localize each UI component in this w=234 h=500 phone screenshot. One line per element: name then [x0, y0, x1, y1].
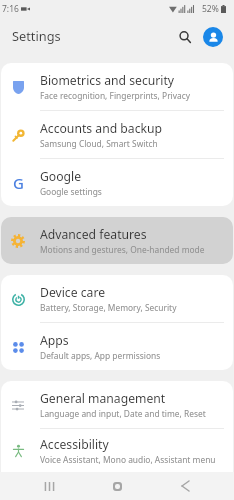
button[interactable]: General management [1, 381, 233, 428]
button[interactable]: Back [172, 473, 198, 499]
staticText: Language and input, Date and time, Reset [40, 408, 206, 419]
staticText: Google settings [40, 186, 102, 197]
staticText: Motions and gestures, One-handed mode [40, 244, 205, 255]
button[interactable]: Device care [1, 275, 233, 322]
staticText: Biometrics and security [40, 72, 175, 89]
button[interactable]: Advanced features [1, 217, 233, 264]
button[interactable]: Home [104, 473, 130, 499]
staticText: G [13, 173, 24, 193]
button[interactable]: Search [173, 25, 197, 49]
button[interactable]: Recent apps [36, 473, 62, 499]
staticText: Face recognition, Fingerprints, Privacy [40, 90, 191, 101]
staticText: Device care [40, 284, 106, 301]
button[interactable]: G [1, 159, 233, 206]
staticText: Default apps, App permissions [40, 350, 161, 361]
staticText: Accounts and backup [40, 120, 163, 137]
button[interactable]: Apps [1, 323, 233, 370]
staticText: Battery, Storage, Memory, Security [40, 302, 177, 313]
button[interactable]: Accessibility [1, 429, 233, 472]
staticText: Settings [12, 27, 61, 44]
staticText: Advanced features [40, 226, 147, 243]
staticText: Accessibility [40, 436, 109, 453]
staticText: Apps [40, 332, 69, 349]
staticText: Voice Assistant, Mono audio, Assistant m… [40, 454, 216, 465]
staticText: Samsung Cloud, Smart Switch [40, 138, 158, 149]
button[interactable]: Biometrics and security [1, 63, 233, 110]
button[interactable]: Account [203, 27, 223, 47]
button[interactable]: Accounts and backup [1, 111, 233, 158]
staticText: 52% [202, 3, 219, 15]
staticText: 7:16 [2, 3, 19, 15]
staticText: General management [40, 390, 166, 407]
staticText: Google [40, 168, 82, 185]
